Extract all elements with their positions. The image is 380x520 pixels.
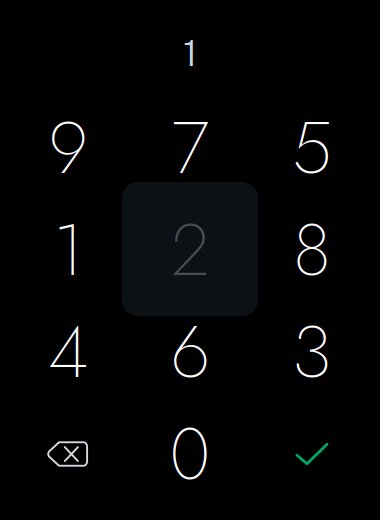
staticText: 2 — [171, 198, 209, 302]
staticText: 3 — [292, 300, 332, 404]
staticText: 1 — [53, 198, 83, 302]
staticText: 1 — [183, 32, 197, 74]
button[interactable]: 1 — [7, 199, 129, 301]
button[interactable]: 3 — [251, 301, 373, 403]
button[interactable]: 5 — [251, 97, 373, 199]
staticText: 7 — [171, 96, 208, 200]
button[interactable]: 0 — [129, 403, 251, 505]
staticText: 6 — [170, 300, 209, 404]
button[interactable]: 8 — [251, 199, 373, 301]
staticText: 9 — [48, 96, 87, 200]
button[interactable]: 9 — [7, 97, 129, 199]
button[interactable]: 2 — [129, 199, 251, 301]
button[interactable]: 6 — [129, 301, 251, 403]
button[interactable]: 7 — [129, 97, 251, 199]
staticText: 5 — [292, 96, 332, 200]
staticText: 4 — [48, 300, 88, 404]
staticText: 0 — [169, 402, 210, 506]
button[interactable]: 4 — [7, 301, 129, 403]
staticText: 8 — [293, 198, 331, 302]
button[interactable]: Confirm — [251, 403, 373, 505]
button[interactable]: Delete — [7, 403, 129, 505]
